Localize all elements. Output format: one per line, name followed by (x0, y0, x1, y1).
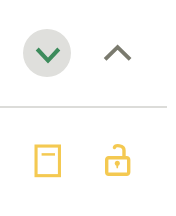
button[interactable]: Collapse (23, 29, 71, 77)
button[interactable]: Notes (23, 136, 71, 184)
button[interactable]: Unlock (93, 136, 141, 184)
button[interactable]: Expand (93, 29, 141, 77)
